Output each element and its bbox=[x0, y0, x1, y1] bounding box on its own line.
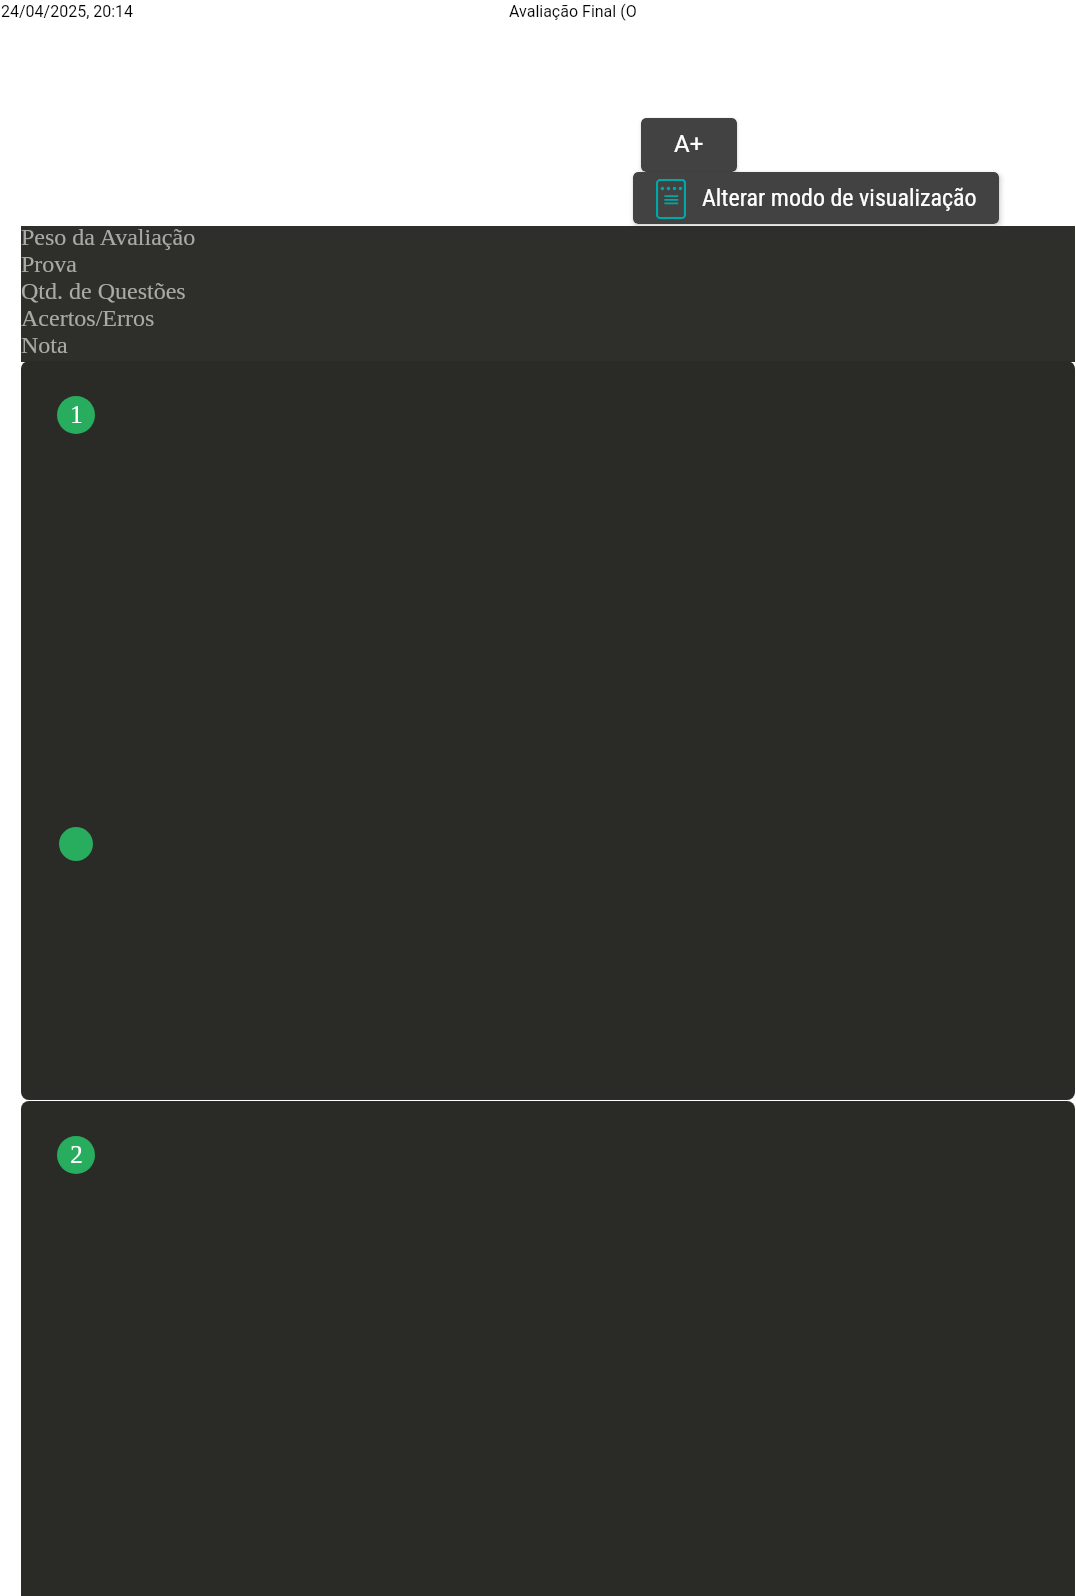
staticText: Peso da Avaliação bbox=[21, 224, 196, 251]
staticText: Prova bbox=[21, 251, 77, 278]
staticText: Avaliação Final (O bbox=[509, 2, 637, 21]
staticText: 1 bbox=[70, 401, 83, 429]
staticText: A+ bbox=[674, 130, 704, 158]
staticText: Alterar modo de visualização bbox=[702, 184, 977, 212]
button[interactable]: 1 bbox=[21, 361, 1075, 1100]
staticText: 24/04/2025, 20:14 bbox=[1, 2, 134, 21]
staticText: Nota bbox=[21, 332, 68, 359]
other: Alterar modo de visualização bbox=[656, 179, 686, 219]
button[interactable]: A+ bbox=[641, 118, 737, 172]
staticText: Qtd. de Questões bbox=[21, 278, 186, 305]
staticText: Acertos/Erros bbox=[21, 305, 155, 332]
button[interactable]: Alterar modo de visualização bbox=[633, 172, 999, 224]
button[interactable]: 2 bbox=[21, 1101, 1075, 1596]
staticText: 2 bbox=[70, 1141, 83, 1169]
